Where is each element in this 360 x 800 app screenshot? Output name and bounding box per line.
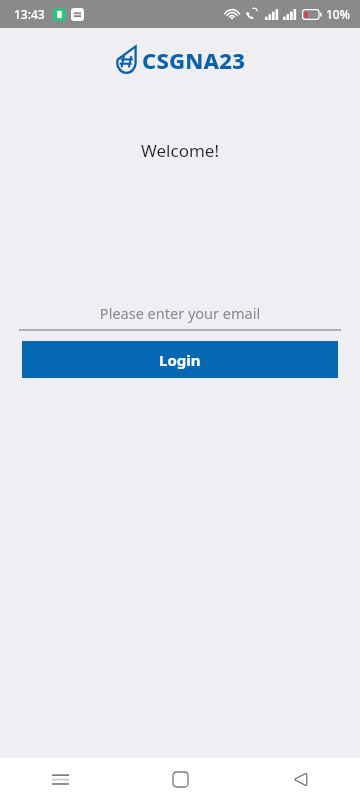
button[interactable]: Recent apps <box>0 758 120 800</box>
staticText: 10% <box>326 6 350 22</box>
staticText: CSGNA23 <box>142 45 246 75</box>
button[interactable]: Home <box>120 758 240 800</box>
button[interactable]: Back <box>240 758 360 800</box>
staticText: Please enter your email <box>19 303 341 323</box>
staticText: Welcome! <box>0 139 360 162</box>
button[interactable]: Login <box>22 341 338 378</box>
staticText: Login <box>159 350 201 370</box>
button[interactable]: Please enter your email <box>19 303 341 331</box>
staticText: 13:43 <box>14 6 45 22</box>
